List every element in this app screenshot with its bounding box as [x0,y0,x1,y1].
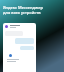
staticText: для всех устройств [3,10,41,15]
staticText: Яндекс Мессенджер [3,5,43,10]
